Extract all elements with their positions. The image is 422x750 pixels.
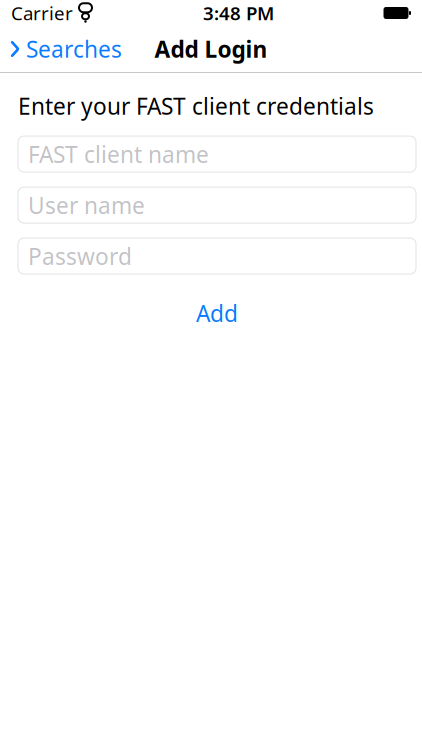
- button[interactable]: Add: [18, 296, 416, 330]
- staticText: Enter your FAST client credentials: [18, 91, 374, 121]
- staticText: Add Login: [154, 34, 267, 64]
- staticText: 3:48 PM: [203, 1, 274, 25]
- button[interactable]: Searches: [0, 26, 122, 72]
- staticText: Password: [28, 241, 132, 271]
- staticText: Searches: [26, 34, 122, 64]
- staticText: Add: [196, 298, 238, 328]
- staticText: FAST client name: [28, 139, 209, 169]
- staticText: Carrier: [11, 1, 73, 25]
- staticText: User name: [28, 190, 145, 220]
